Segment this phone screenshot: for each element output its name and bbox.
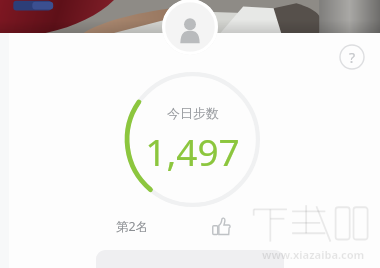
staticText: www.xiazaiba.com	[262, 247, 365, 262]
staticText: 今日步数	[167, 105, 219, 121]
button[interactable]: 第2名	[112, 216, 153, 237]
staticText: 第2名	[116, 218, 149, 235]
button[interactable]: Profile avatar	[162, 0, 218, 55]
staticText: 1,497	[145, 126, 240, 176]
button[interactable]	[96, 250, 284, 268]
button[interactable]: Help	[339, 44, 365, 70]
button[interactable]: Like	[209, 214, 233, 238]
staticText: ?	[349, 48, 356, 67]
